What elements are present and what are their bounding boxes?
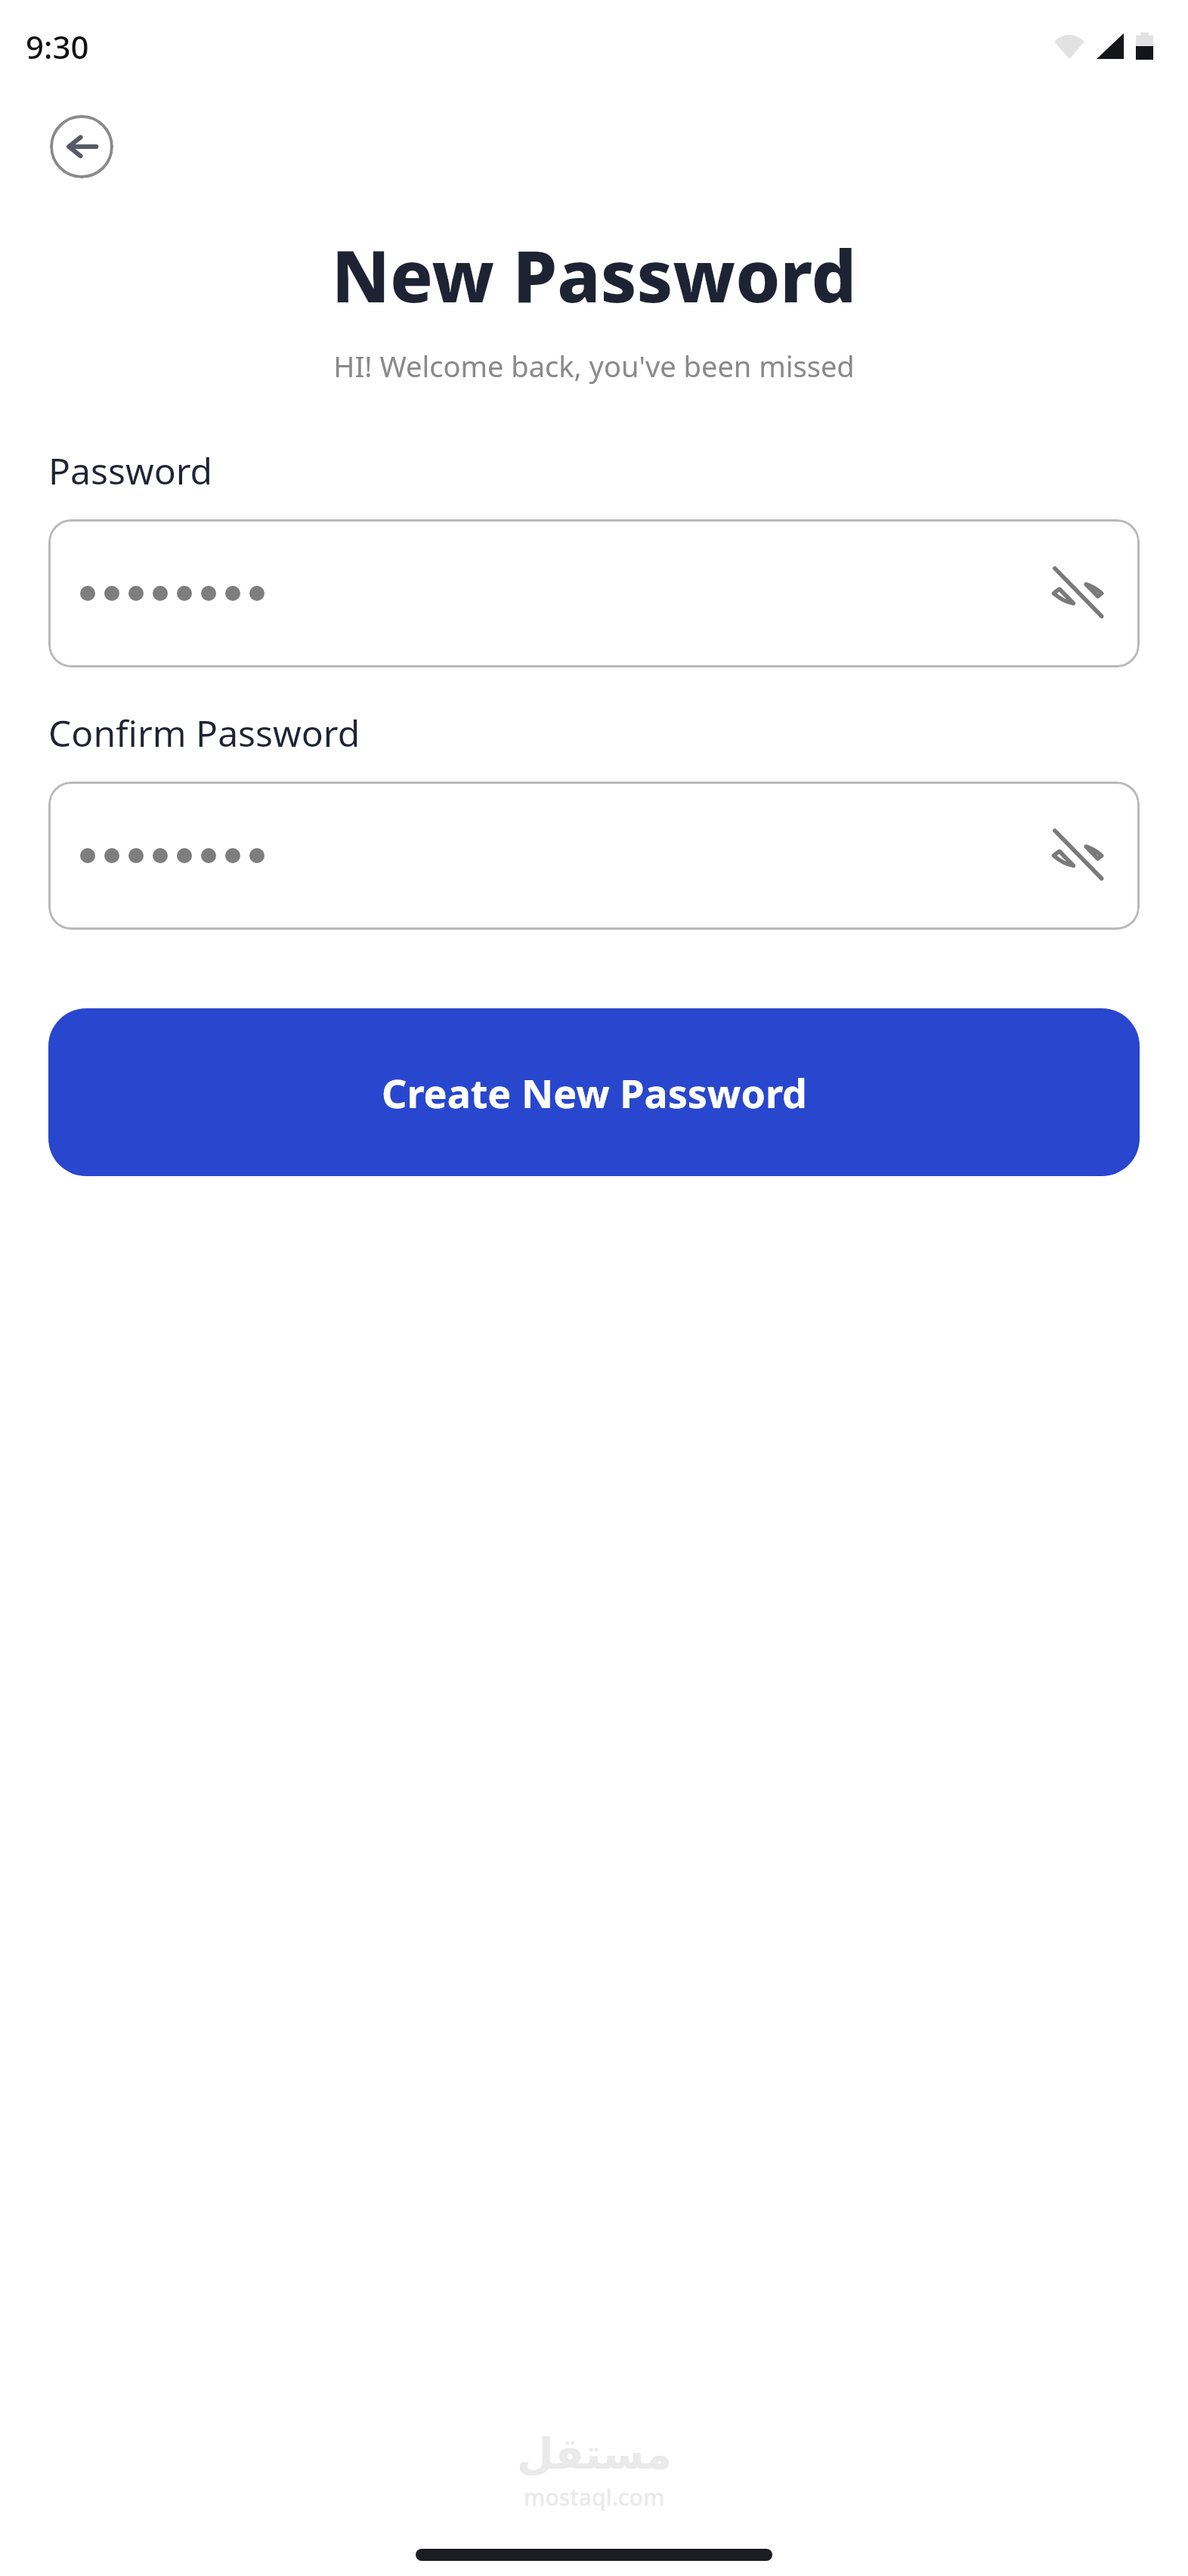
button[interactable]: Toggle password visibility: [1041, 557, 1114, 630]
button[interactable]: Toggle password visibility: [48, 519, 1140, 667]
button[interactable]: Create New Password: [48, 1008, 1140, 1176]
staticText: Create New Password: [382, 1066, 807, 1119]
button[interactable]: Toggle password visibility: [1041, 819, 1114, 892]
staticText: Password: [48, 446, 213, 495]
staticText: New Password: [0, 227, 1188, 324]
staticText: مستقل: [517, 2429, 672, 2478]
staticText: 9:30: [26, 25, 89, 68]
staticText: HI! Welcome back, you've been missed: [0, 346, 1188, 385]
button[interactable]: Back: [50, 115, 113, 178]
staticText: mostaql.com: [524, 2482, 665, 2513]
staticText: Confirm Password: [48, 708, 360, 757]
button[interactable]: Toggle password visibility: [48, 782, 1140, 930]
